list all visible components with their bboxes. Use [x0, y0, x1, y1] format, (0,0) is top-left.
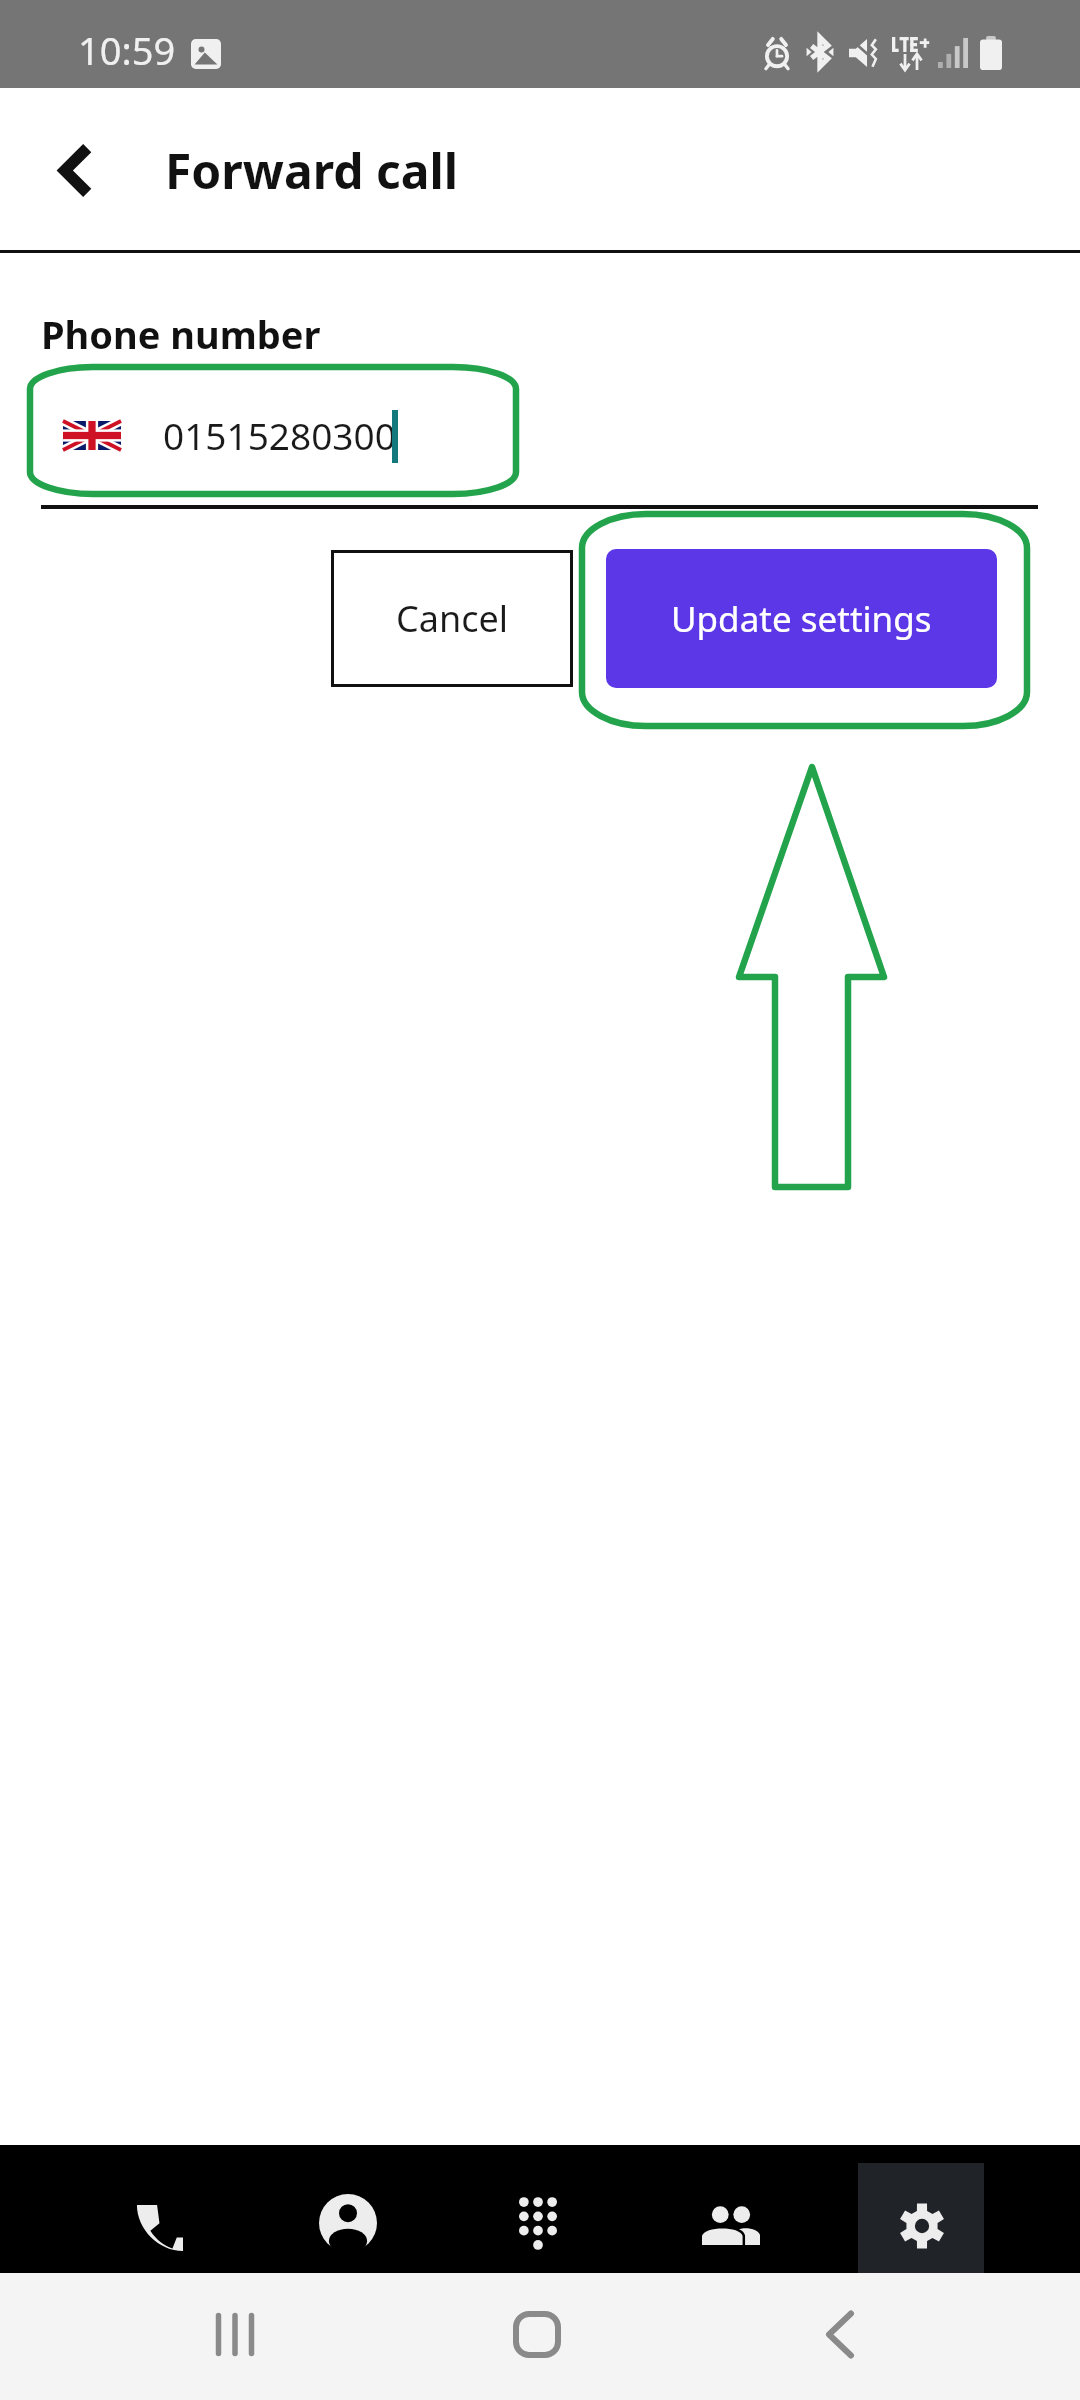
staticText: 10:59	[78, 24, 176, 76]
button[interactable]: Groups	[635, 2145, 827, 2273]
button[interactable]: Recent apps	[175, 2273, 295, 2400]
staticText: Cancel	[396, 594, 509, 643]
button[interactable]: Update settings	[606, 549, 997, 688]
staticText: 01515280300	[163, 410, 396, 460]
button[interactable]: Contacts	[252, 2145, 444, 2273]
button[interactable]: Back	[780, 2273, 900, 2400]
button[interactable]: Back	[18, 108, 128, 218]
button[interactable]: Home	[477, 2273, 597, 2400]
button[interactable]: Call	[63, 2145, 255, 2273]
staticText: Forward call	[165, 138, 459, 203]
staticText: Phone number	[41, 308, 321, 360]
staticText: Update settings	[671, 595, 932, 643]
button[interactable]: Cancel	[331, 550, 573, 687]
button[interactable]: Settings	[826, 2145, 1018, 2273]
button[interactable]: Keypad	[442, 2145, 634, 2273]
